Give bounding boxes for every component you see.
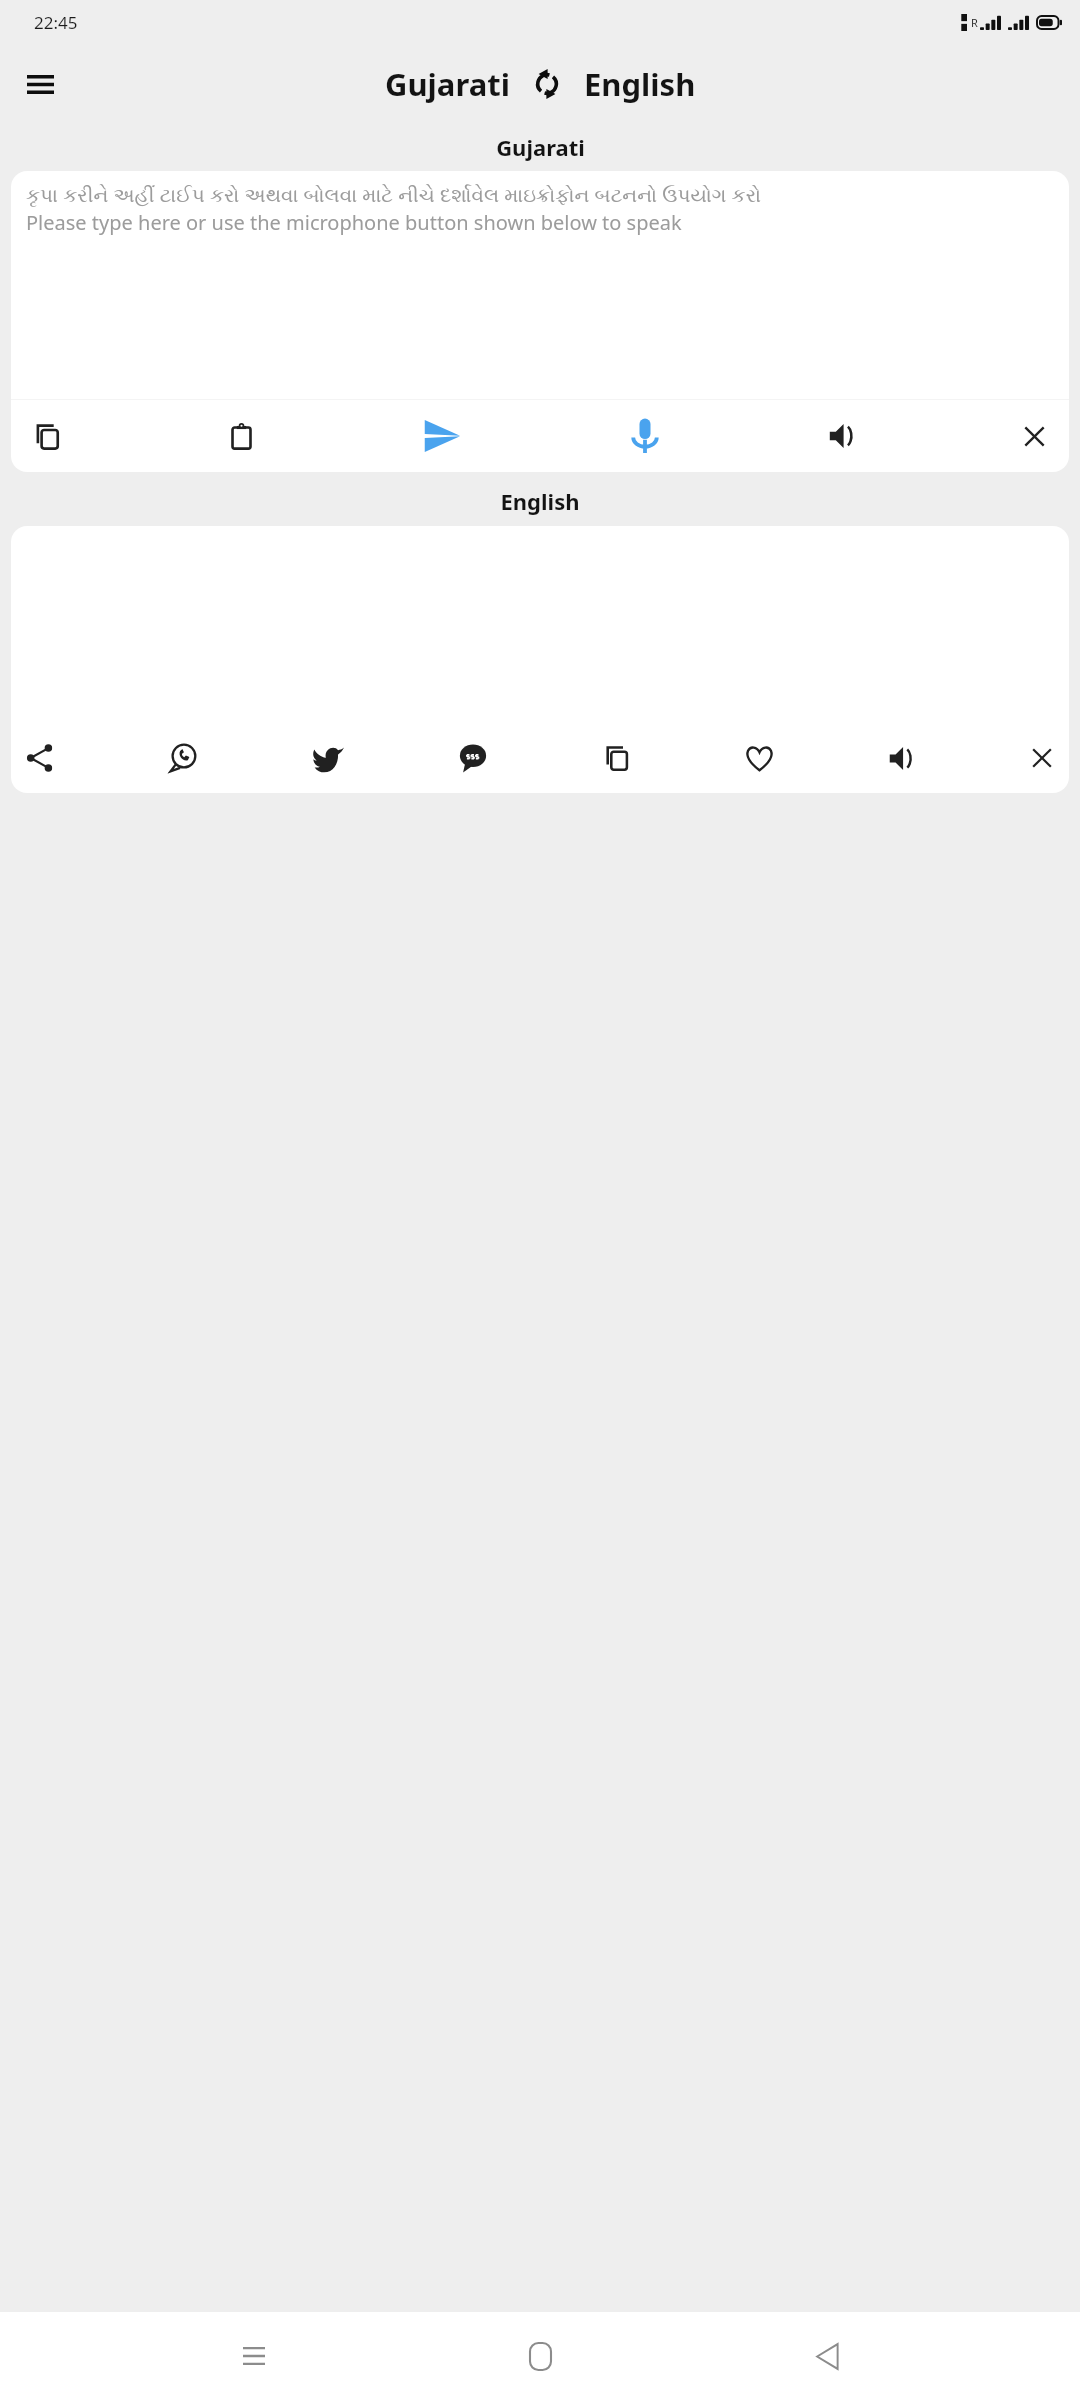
staticText: 22:45 bbox=[34, 11, 78, 34]
button[interactable]: Back bbox=[794, 2323, 860, 2389]
button[interactable]: Recent apps bbox=[221, 2323, 287, 2389]
button[interactable]: English bbox=[580, 61, 700, 107]
button[interactable]: Play audio bbox=[820, 413, 866, 459]
button[interactable]: Home bbox=[507, 2323, 573, 2389]
staticText: R bbox=[971, 15, 978, 30]
staticText: English bbox=[584, 63, 696, 105]
button[interactable]: Add to favourites bbox=[738, 737, 781, 780]
button[interactable]: Send as SMS bbox=[451, 736, 495, 780]
button[interactable]: Play audio bbox=[882, 738, 923, 779]
button[interactable]: Share on Twitter bbox=[306, 736, 351, 781]
button[interactable]: Clear text bbox=[1023, 739, 1061, 777]
button[interactable]: Copy bbox=[24, 413, 71, 460]
button[interactable]: Clear text bbox=[1013, 415, 1056, 458]
staticText: Gujarati bbox=[385, 63, 510, 105]
button[interactable]: Open navigation menu bbox=[12, 56, 68, 112]
button[interactable]: Share bbox=[19, 737, 61, 779]
button[interactable]: Paste bbox=[218, 413, 265, 460]
button[interactable]: Translate bbox=[413, 407, 471, 465]
staticText: કૃપા કરીને અહીં ટાઈપ કરો અથવા બોલવા માટે… bbox=[26, 181, 762, 236]
staticText: Gujarati bbox=[496, 132, 585, 162]
staticText: English bbox=[500, 486, 580, 516]
button[interactable]: Share on WhatsApp bbox=[161, 736, 205, 780]
button[interactable]: Swap languages bbox=[521, 58, 573, 110]
button[interactable]: કૃપા કરીને અહીં ટાઈપ કરો અથવા બોલવા માટે… bbox=[11, 171, 1069, 399]
button[interactable]: Gujarati bbox=[381, 61, 514, 107]
button[interactable]: Speak using microphone bbox=[618, 409, 672, 463]
button[interactable]: Copy bbox=[596, 737, 638, 779]
